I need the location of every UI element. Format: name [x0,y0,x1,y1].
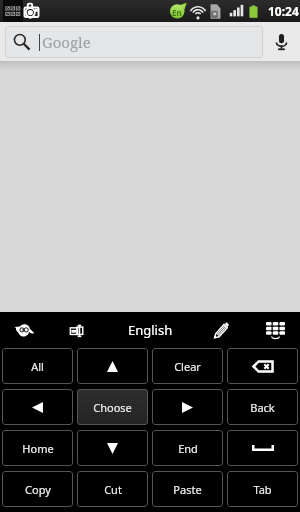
staticText: English [128,321,173,339]
button[interactable]: Number keypad [256,313,294,347]
button[interactable]: Clear [152,348,223,384]
button[interactable]: Paste [152,471,223,507]
button[interactable]: Edit [202,313,240,347]
button[interactable]: GO Keyboard [5,313,43,347]
staticText: End [178,441,198,456]
button[interactable]: Google [0,22,300,61]
button[interactable]: Tab [227,471,298,507]
button[interactable]: space [227,430,298,466]
button[interactable]: right [152,389,223,425]
staticText: Cut [104,482,122,497]
button[interactable]: del [227,348,298,384]
button[interactable]: English [111,313,189,347]
button[interactable]: Copy [2,471,73,507]
button[interactable]: Switch input method [57,313,95,347]
staticText: Clear [174,359,201,374]
button[interactable]: Home [2,430,73,466]
staticText: Tab [253,482,272,497]
staticText: All [31,359,44,374]
staticText: En [172,7,182,18]
staticText: Home [22,441,54,456]
button[interactable]: All [2,348,73,384]
button[interactable]: up [77,348,148,384]
staticText: 10:24 [268,3,299,19]
button[interactable]: left [2,389,73,425]
staticText: Copy [25,482,51,497]
staticText: Google [42,32,91,52]
button[interactable]: End [152,430,223,466]
staticText: Back [250,400,275,415]
button[interactable]: Back [227,389,298,425]
button[interactable]: down [77,430,148,466]
button[interactable]: Cut [77,471,148,507]
staticText: Paste [173,482,202,497]
button[interactable]: Choose [77,389,148,425]
button[interactable]: Voice search [263,22,300,61]
staticText: Choose [93,400,132,415]
